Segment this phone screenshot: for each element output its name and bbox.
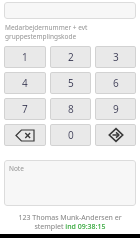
button[interactable]: Backspace bbox=[4, 124, 46, 146]
button[interactable] bbox=[4, 2, 136, 19]
button[interactable]: Note bbox=[4, 160, 136, 206]
staticText: 1 bbox=[22, 50, 28, 64]
staticText: 4 bbox=[22, 76, 28, 90]
staticText: Note bbox=[9, 164, 24, 173]
button[interactable]: 6 bbox=[95, 72, 136, 94]
staticText: gruppestemplingskode bbox=[5, 32, 77, 41]
staticText: 0 bbox=[68, 128, 74, 142]
staticText: 8 bbox=[68, 102, 74, 116]
button[interactable]: 0 bbox=[50, 124, 91, 146]
button[interactable]: 1 bbox=[4, 46, 46, 68]
staticText: 123 Thomas Munk-Andersen er stemplet ind… bbox=[6, 213, 134, 231]
button[interactable]: 2 bbox=[50, 46, 91, 68]
staticText: 5 bbox=[68, 76, 74, 90]
staticText: 7 bbox=[22, 102, 28, 116]
staticText: 6 bbox=[113, 76, 119, 90]
button[interactable]: 8 bbox=[50, 98, 91, 120]
staticText: 3 bbox=[113, 50, 119, 64]
staticText: 9 bbox=[113, 102, 119, 116]
button[interactable]: 7 bbox=[4, 98, 46, 120]
button[interactable]: Enter bbox=[95, 124, 136, 146]
button[interactable]: 4 bbox=[4, 72, 46, 94]
staticText: 2 bbox=[68, 50, 74, 64]
button[interactable]: 3 bbox=[95, 46, 136, 68]
button[interactable]: 9 bbox=[95, 98, 136, 120]
staticText: Medarbejdernummer + evt bbox=[5, 23, 88, 32]
button[interactable]: 5 bbox=[50, 72, 91, 94]
